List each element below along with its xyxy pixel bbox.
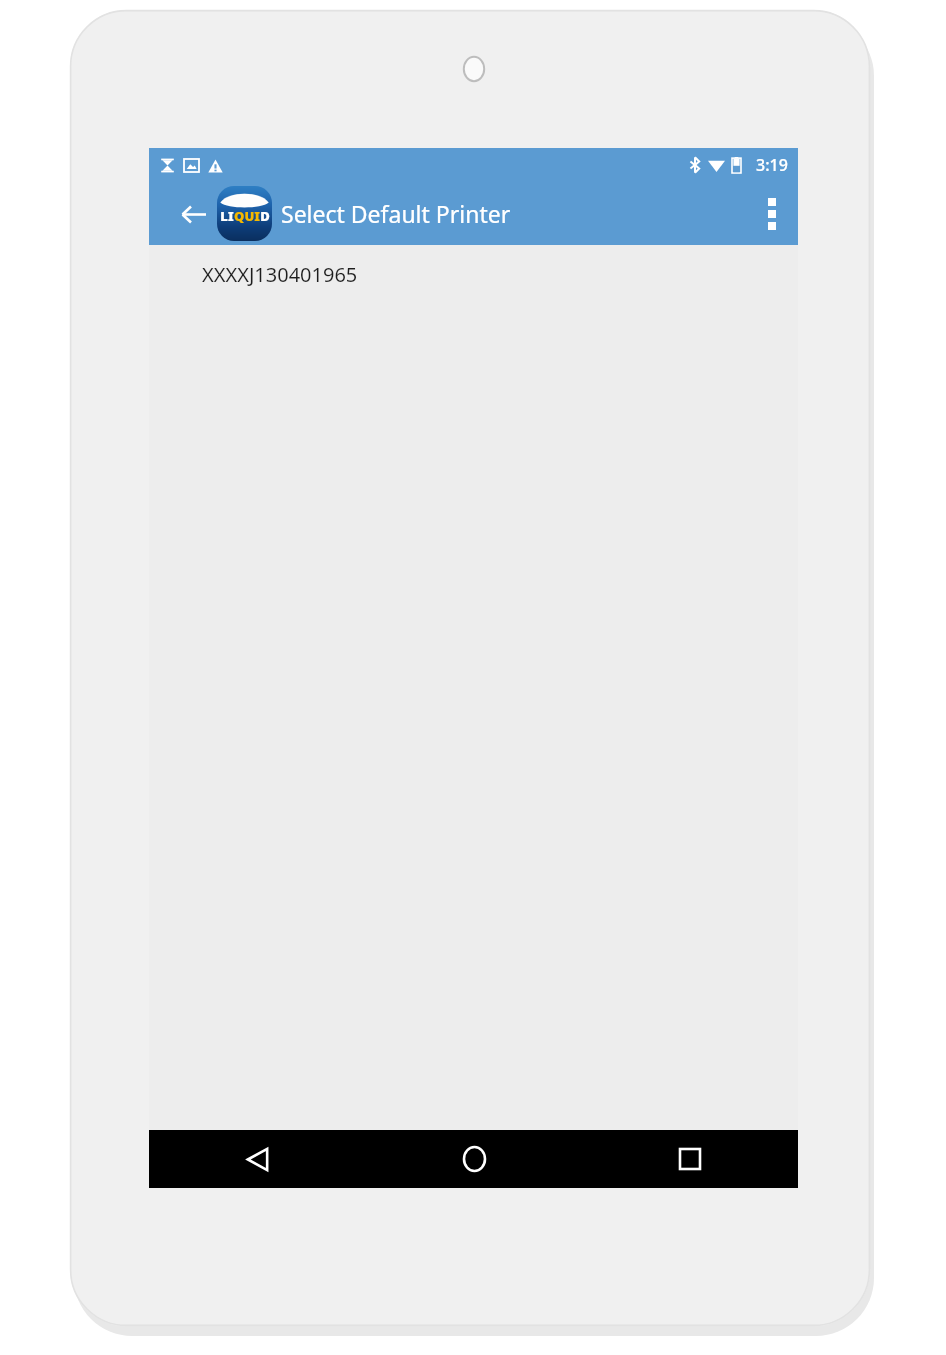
button[interactable]: More options <box>746 182 798 245</box>
button[interactable]: Recent apps <box>582 1130 798 1188</box>
button[interactable]: Back <box>149 1130 366 1188</box>
staticText: XXXXJ130401965 <box>202 261 358 288</box>
staticText: Select Default Printer <box>281 198 511 229</box>
staticText: QUI <box>234 207 260 225</box>
button[interactable]: XXXXJ130401965 <box>149 245 798 303</box>
button[interactable]: Home <box>366 1130 582 1188</box>
staticText: LI <box>220 207 234 225</box>
button[interactable]: Navigate up <box>171 192 215 236</box>
staticText: 3:19 <box>756 154 788 176</box>
staticText: D <box>260 207 270 225</box>
